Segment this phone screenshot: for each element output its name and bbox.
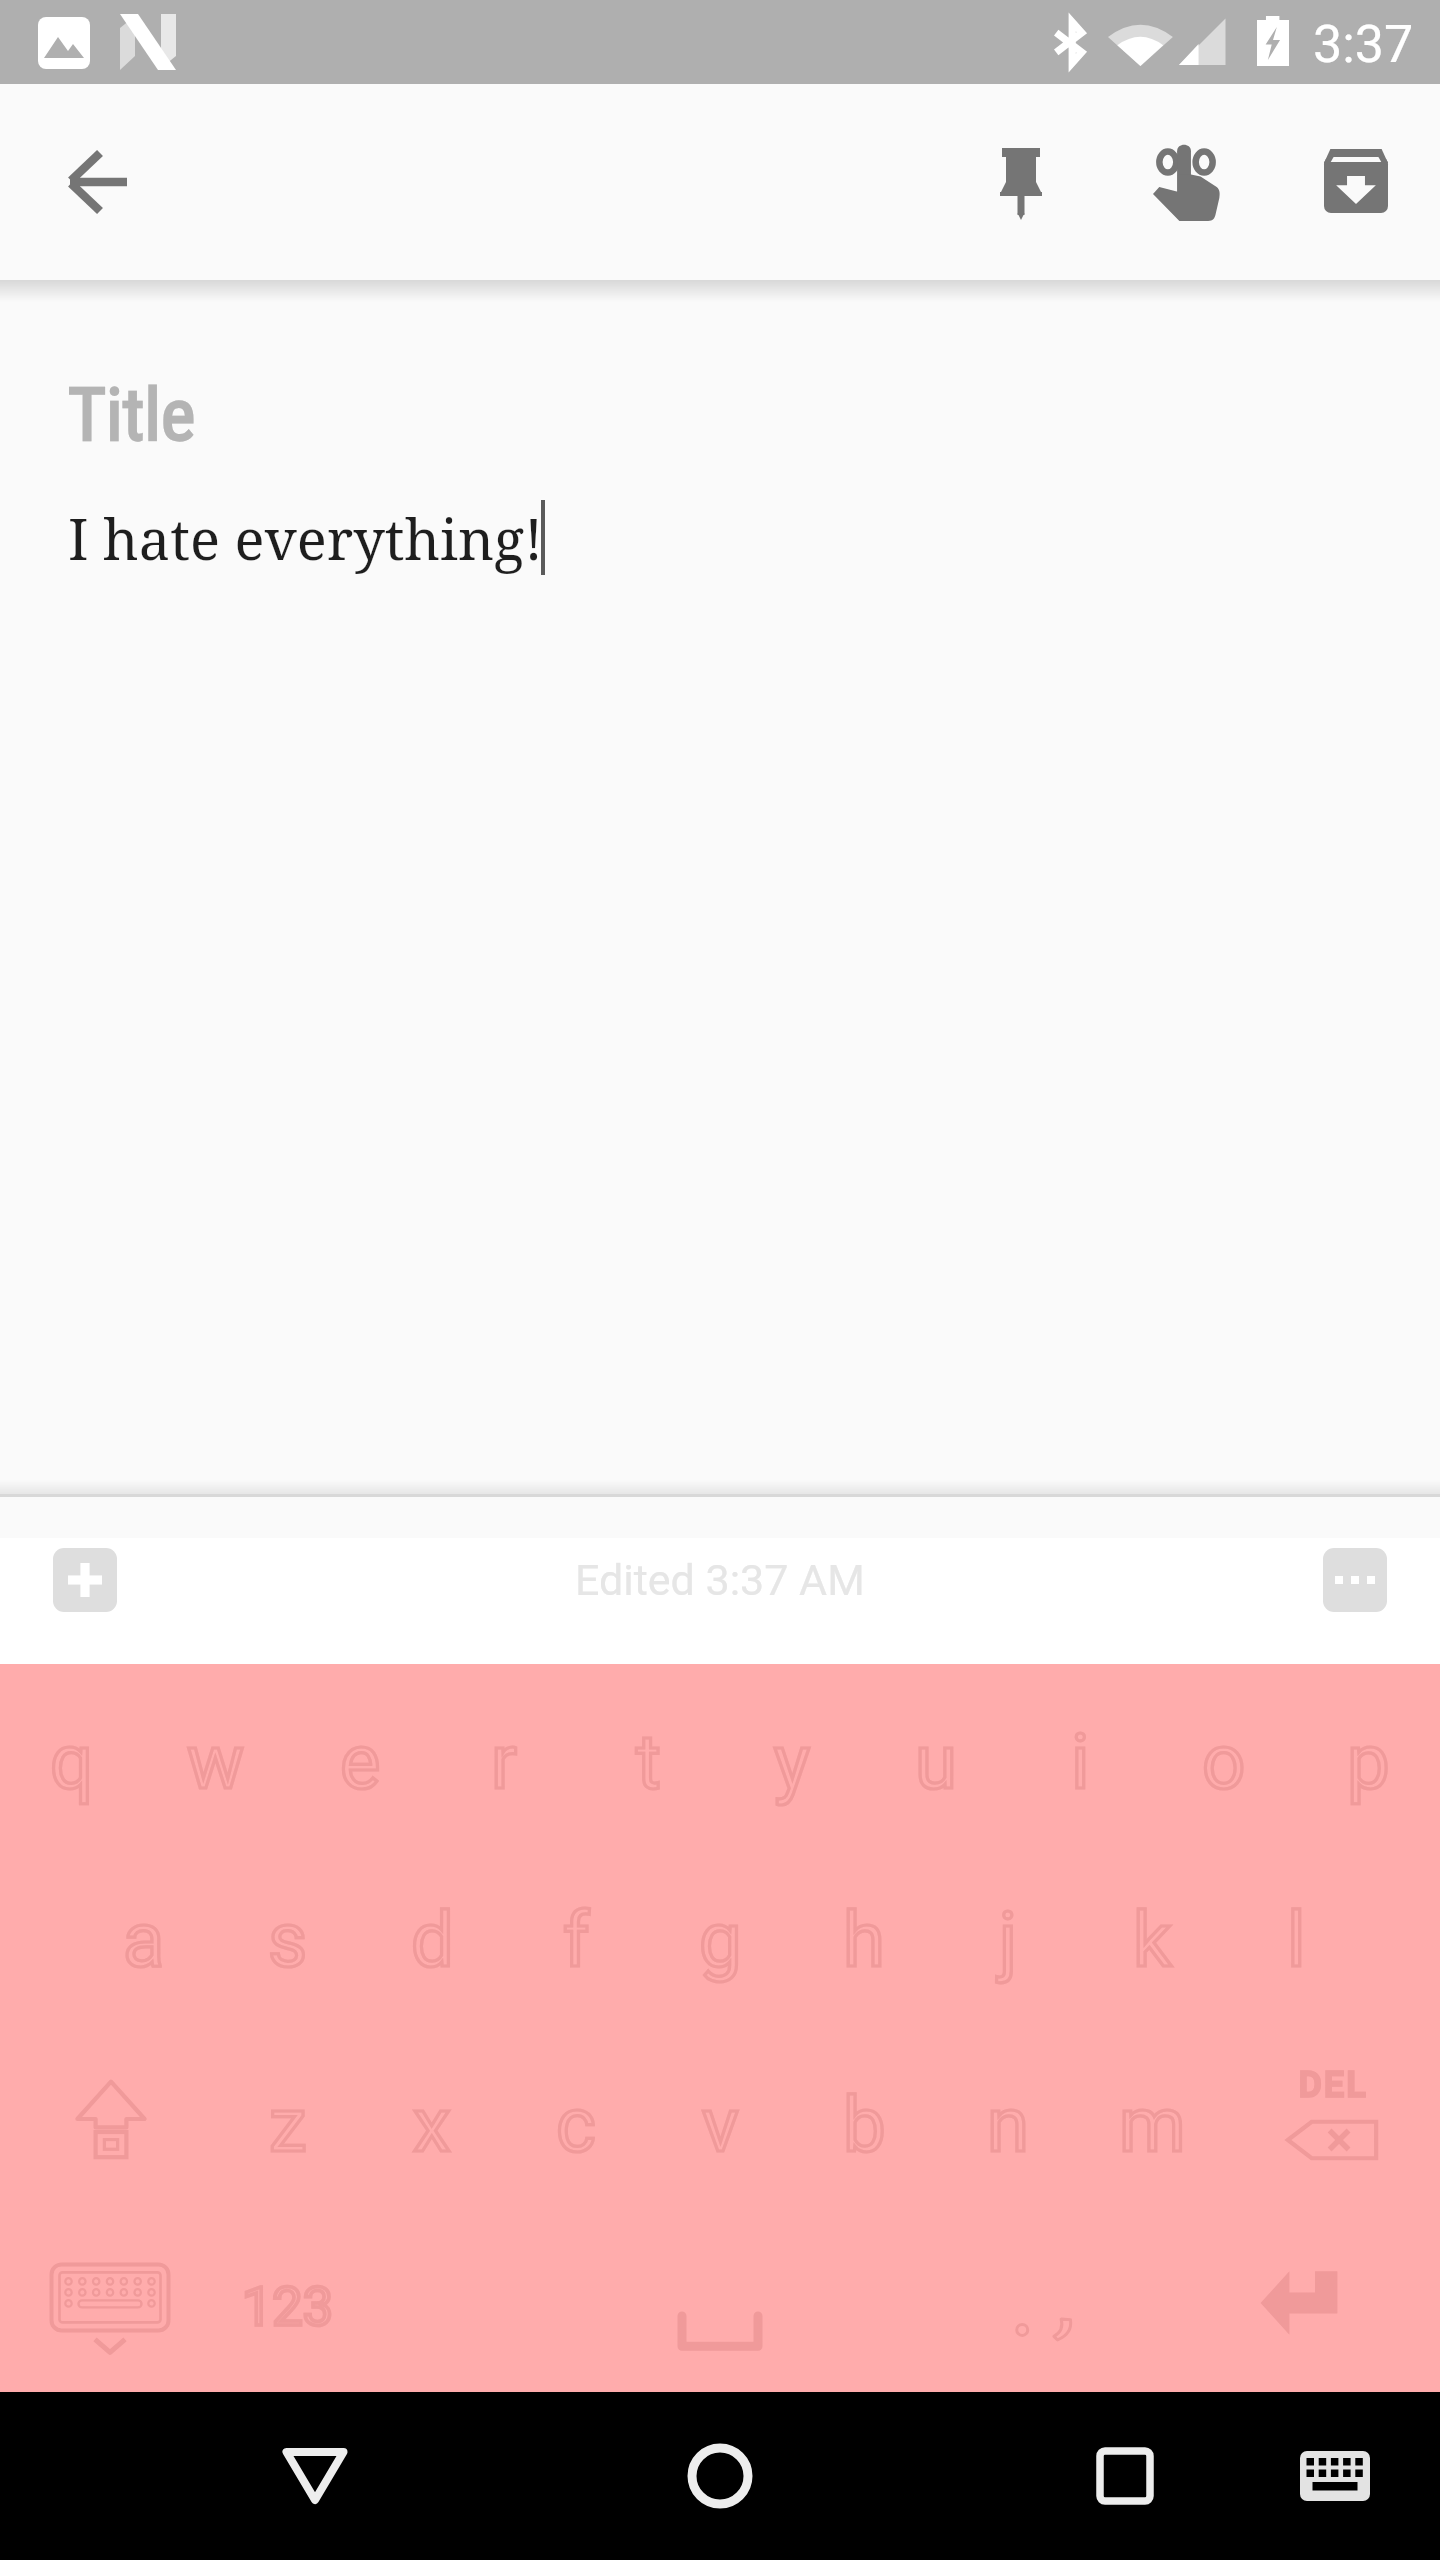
staticText: t [636, 1717, 661, 1806]
button[interactable]: Shift [76, 2077, 146, 2161]
button[interactable]: e [288, 1676, 432, 1846]
button[interactable]: Switch keyboard [35, 2244, 185, 2364]
button[interactable]: q [0, 1676, 144, 1846]
staticText: y [774, 1717, 810, 1806]
button[interactable]: Enter [1259, 2270, 1339, 2336]
staticText: p [1347, 1717, 1390, 1806]
button[interactable]: Numbers [213, 2240, 363, 2372]
button[interactable]: d [360, 1854, 504, 2024]
staticText: q [50, 1717, 94, 1806]
button[interactable]: More options [1323, 1548, 1387, 1612]
staticText: e [340, 1717, 381, 1806]
staticText: k [1133, 1895, 1172, 1984]
staticText: x [413, 2080, 451, 2169]
button[interactable]: b [792, 2039, 936, 2209]
button[interactable]: Space [670, 2311, 770, 2353]
staticText: o [1202, 1717, 1246, 1806]
staticText: j [999, 1895, 1018, 1984]
button[interactable]: Add [53, 1548, 117, 1612]
staticText: z [269, 2080, 307, 2169]
button[interactable]: g [648, 1854, 792, 2024]
button[interactable]: h [792, 1854, 936, 2024]
button[interactable]: Reminder [1126, 122, 1246, 242]
staticText: g [699, 1895, 742, 1984]
button[interactable]: Archive [1298, 123, 1414, 239]
staticText: h [843, 1895, 885, 1984]
button[interactable]: k [1080, 1854, 1224, 2024]
button[interactable]: Recents [1065, 2416, 1185, 2536]
button[interactable]: Back [255, 2416, 375, 2536]
button[interactable]: Switch keyboard [1275, 2416, 1395, 2536]
staticText: v [702, 2080, 739, 2169]
staticText: Edited 3:37 AM [575, 1555, 865, 1605]
staticText: Title [68, 372, 196, 458]
button[interactable]: Pin [963, 126, 1079, 242]
staticText: n [987, 2080, 1029, 2169]
staticText: m [1119, 2080, 1186, 2169]
button[interactable]: Punctuation [1010, 2309, 1082, 2345]
staticText: f [563, 1895, 590, 1984]
button[interactable]: Navigate up [40, 124, 156, 240]
staticText: l [1287, 1895, 1306, 1984]
button[interactable]: m [1080, 2039, 1224, 2209]
staticText: I hate everything! [68, 500, 543, 576]
staticText: d [411, 1895, 454, 1984]
button[interactable]: p [1296, 1676, 1440, 1846]
button[interactable]: Delete [1286, 2116, 1378, 2164]
staticText: u [915, 1717, 957, 1806]
staticText: a [123, 1895, 165, 1984]
button[interactable]: a [72, 1854, 216, 2024]
staticText: i [1071, 1717, 1090, 1806]
staticText: w [187, 1717, 245, 1806]
staticText: b [843, 2080, 886, 2169]
staticText: DEL [1299, 2064, 1368, 2104]
staticText: 3:37 [1313, 14, 1414, 75]
staticText: c [556, 2080, 596, 2169]
staticText: s [268, 1895, 308, 1984]
staticText: r [491, 1717, 517, 1806]
button[interactable]: Home [660, 2416, 780, 2536]
staticText: 123 [242, 2275, 334, 2338]
button[interactable]: w [144, 1676, 288, 1846]
